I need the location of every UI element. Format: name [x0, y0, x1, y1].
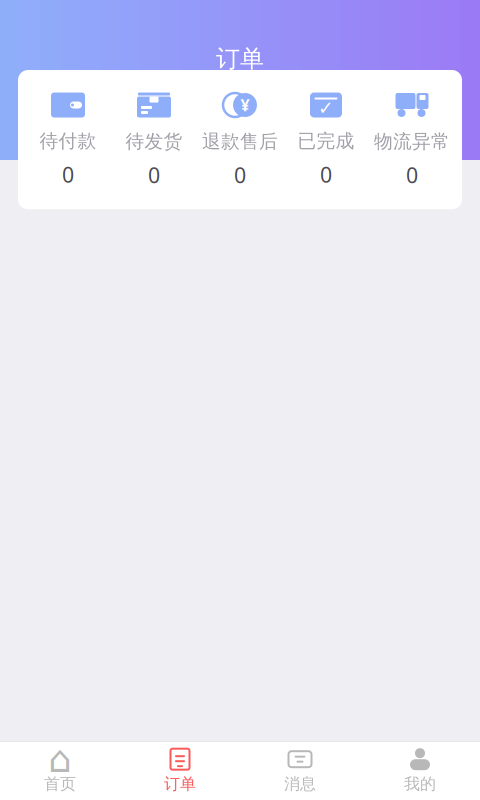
staticText: 首页	[44, 774, 76, 794]
staticText: 已完成	[297, 129, 354, 152]
button[interactable]: 订单	[120, 742, 240, 800]
button[interactable]: ⌂	[0, 742, 120, 800]
staticText: 待发货	[125, 130, 182, 153]
staticText: 物流异常	[374, 130, 450, 153]
staticText: 订单	[164, 774, 196, 794]
staticText: 0	[234, 161, 246, 189]
button[interactable]: 我的	[360, 742, 480, 800]
staticText: ¥	[240, 94, 249, 116]
staticText: ⌂	[48, 738, 72, 780]
staticText: 我的	[404, 774, 436, 794]
staticText: 退款售后	[202, 130, 278, 153]
button[interactable]: 物流异常	[369, 92, 455, 189]
staticText: 订单	[216, 44, 264, 73]
button[interactable]: 待付款	[25, 92, 111, 189]
staticText: ✓	[318, 97, 334, 119]
staticText: 0	[406, 161, 418, 189]
button[interactable]: 待发货	[111, 92, 197, 189]
staticText: 消息	[284, 774, 316, 794]
button[interactable]: ¥	[197, 92, 283, 189]
staticText: 0	[320, 160, 332, 189]
staticText: 待付款	[39, 129, 96, 152]
staticText: 0	[62, 160, 74, 189]
button[interactable]: 消息	[240, 742, 360, 800]
button[interactable]: ✓	[283, 92, 369, 189]
staticText: 0	[148, 161, 160, 189]
